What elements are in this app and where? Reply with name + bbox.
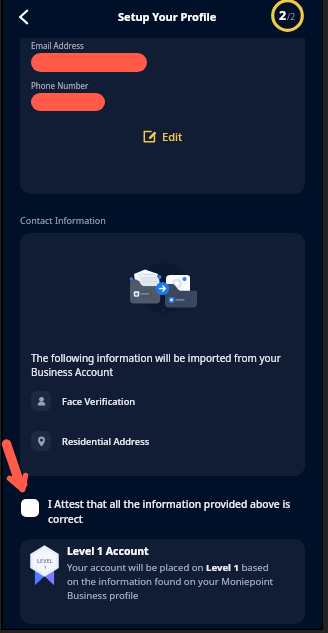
button[interactable]: I Attest that all the information provid… bbox=[21, 497, 300, 526]
staticText: Residential Address bbox=[62, 435, 150, 448]
staticText: Face Verification bbox=[62, 395, 136, 408]
staticText: Email Address bbox=[31, 40, 84, 51]
staticText: 1 bbox=[44, 565, 47, 570]
staticText: /2 bbox=[287, 11, 296, 23]
staticText: Your account will be placed on Level 1 b… bbox=[67, 561, 280, 602]
button[interactable]: Back bbox=[7, 0, 41, 33]
staticText: Level 1 Account bbox=[67, 544, 149, 558]
staticText: I Attest that all the information provid… bbox=[48, 497, 300, 526]
staticText: Phone Number bbox=[31, 80, 89, 91]
button[interactable]: Face Verification bbox=[31, 391, 136, 411]
button[interactable]: Residential Address bbox=[31, 431, 150, 451]
staticText: Setup Your Profile bbox=[118, 9, 217, 24]
staticText: 2 bbox=[279, 7, 287, 24]
staticText: LEVEL bbox=[37, 558, 53, 565]
staticText: The following information will be import… bbox=[31, 351, 294, 379]
button[interactable]: 2 bbox=[269, 0, 306, 32]
button[interactable]: Edit bbox=[31, 129, 294, 144]
staticText: Edit bbox=[162, 129, 183, 144]
staticText: Contact Information bbox=[20, 214, 106, 226]
